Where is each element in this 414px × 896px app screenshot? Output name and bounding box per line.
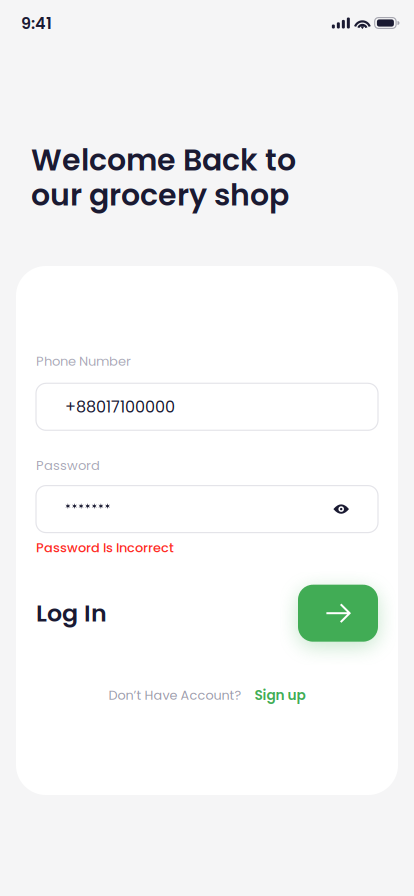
staticText: our grocery shop xyxy=(31,174,289,216)
staticText: Log In xyxy=(36,597,107,630)
staticText: Password xyxy=(36,456,100,475)
staticText: Sign up xyxy=(254,686,305,705)
button[interactable]: Log in xyxy=(298,585,378,642)
button[interactable]: Sign up xyxy=(241,686,305,705)
staticText: +88017100000 xyxy=(65,396,175,418)
staticText: Phone Number xyxy=(36,352,131,370)
button[interactable]: Show password xyxy=(333,503,378,515)
staticText: Don’t Have Account? xyxy=(108,686,241,704)
staticText: Welcome Back to xyxy=(31,139,296,181)
staticText: 9:41 xyxy=(21,12,52,35)
staticText: Password Is Incorrect xyxy=(36,539,174,557)
